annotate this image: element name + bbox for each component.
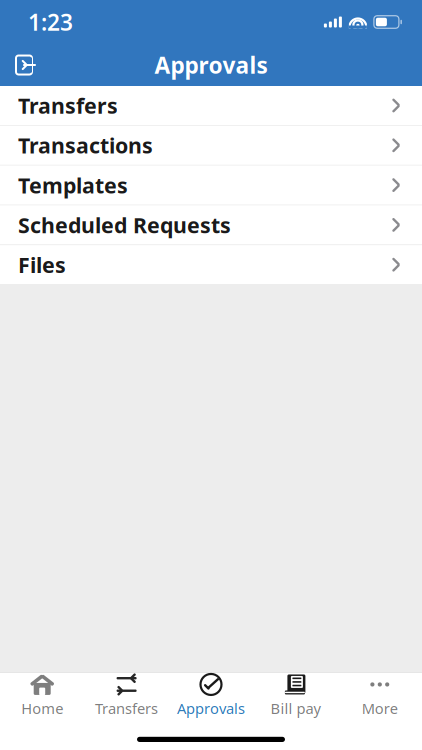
staticText: Approvals bbox=[154, 50, 267, 80]
staticText: Transfers bbox=[18, 91, 118, 120]
button[interactable]: Transfers bbox=[84, 673, 169, 719]
button[interactable]: Approvals bbox=[169, 673, 253, 719]
button[interactable]: Bill pay bbox=[253, 673, 338, 719]
staticText: Transactions bbox=[18, 131, 153, 159]
button[interactable]: Home bbox=[0, 673, 84, 719]
staticText: Bill pay bbox=[270, 698, 320, 718]
staticText: Transfers bbox=[95, 698, 158, 718]
button[interactable]: Templates bbox=[0, 166, 422, 205]
button[interactable]: Sign out bbox=[0, 44, 48, 86]
button[interactable]: Files bbox=[0, 245, 422, 285]
button[interactable]: Transactions bbox=[0, 126, 422, 166]
button[interactable]: Transfers bbox=[0, 86, 422, 126]
button[interactable]: More bbox=[338, 673, 422, 719]
staticText: Files bbox=[18, 250, 66, 279]
staticText: 1:23 bbox=[28, 7, 73, 37]
staticText: More bbox=[362, 698, 398, 718]
staticText: Approvals bbox=[177, 698, 245, 718]
staticText: Scheduled Requests bbox=[18, 211, 231, 239]
staticText: Templates bbox=[18, 171, 128, 199]
button[interactable]: Scheduled Requests bbox=[0, 205, 422, 245]
staticText: Home bbox=[21, 698, 63, 718]
